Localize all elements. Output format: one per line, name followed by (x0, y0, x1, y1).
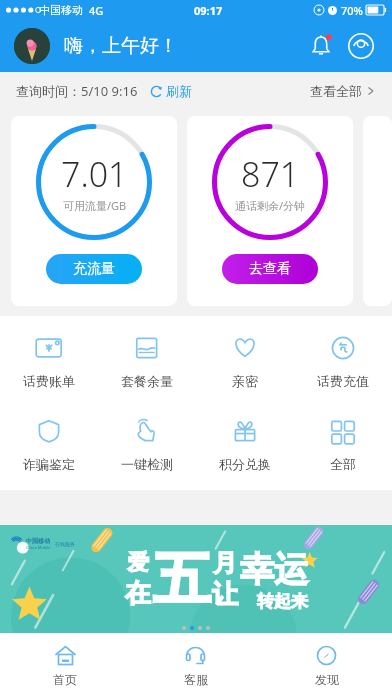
staticText: 积分兑换 (219, 456, 271, 472)
button[interactable]: 全部 (294, 413, 392, 474)
staticText: 爱 (127, 549, 149, 577)
staticText: 嗨，上午好！ (64, 34, 178, 58)
staticText: 充流量 (73, 260, 115, 278)
staticText: 去查看 (249, 260, 291, 278)
staticText: 发现 (315, 672, 339, 687)
button[interactable]: 查看全部 (310, 83, 376, 99)
button[interactable]: 亲密 (196, 330, 294, 391)
button[interactable]: 一键检测 (98, 413, 196, 474)
staticText: 中国移动 (39, 3, 83, 17)
staticText: 让 (212, 578, 238, 611)
button[interactable]: 871 (187, 116, 353, 306)
staticText: 月 (213, 548, 237, 578)
staticText: 871 (241, 151, 300, 197)
staticText: 转起来 (257, 591, 308, 612)
staticText: 客服 (184, 672, 208, 687)
button[interactable]: 7.01 (11, 116, 177, 306)
staticText: 话费充值 (317, 373, 369, 389)
staticText: China Mobile (26, 545, 51, 550)
button[interactable]: 首页 (0, 633, 130, 696)
button[interactable]: 充流量 (46, 254, 142, 284)
button[interactable]: Notifications (304, 29, 338, 63)
button[interactable]: Profile avatar (14, 28, 50, 64)
staticText: 幸运 (240, 548, 308, 591)
staticText: 一键检测 (121, 456, 173, 472)
staticText: 可用流量/GB (63, 198, 127, 213)
button[interactable]: 话费充值 (294, 330, 392, 391)
button[interactable]: Account (344, 29, 378, 63)
staticText: 通话剩余/分钟 (235, 198, 306, 213)
button[interactable]: 去查看 (222, 254, 318, 284)
staticText: 五 (153, 543, 211, 616)
staticText: 4G (89, 3, 104, 18)
staticText: 在 (125, 577, 151, 610)
button[interactable]: 刷新 (150, 83, 192, 99)
staticText: 在线服务 (55, 541, 75, 547)
staticText: 全部 (330, 456, 356, 472)
staticText: 套餐余量 (121, 373, 173, 389)
button[interactable]: 积分兑换 (196, 413, 294, 474)
button[interactable]: Promotion banner (0, 525, 392, 633)
staticText: 09:17 (194, 3, 223, 18)
staticText: 首页 (53, 672, 77, 687)
staticText: 话费账单 (23, 373, 75, 389)
staticText: 中国移动 (26, 537, 50, 545)
staticText: 诈骗鉴定 (23, 456, 75, 472)
staticText: 刷新 (166, 83, 192, 99)
staticText: 7.01 (61, 151, 128, 197)
button[interactable]: 客服 (130, 633, 261, 696)
button[interactable]: 发现 (261, 633, 392, 696)
staticText: 70% (341, 3, 363, 18)
staticText: 查询时间：5/10 9:16 (16, 82, 138, 100)
button[interactable]: 诈骗鉴定 (0, 413, 98, 474)
button[interactable]: 套餐余量 (98, 330, 196, 391)
staticText: 亲密 (232, 373, 258, 389)
button[interactable]: 话费账单 (0, 330, 98, 391)
staticText: 查看全部 (310, 83, 362, 99)
